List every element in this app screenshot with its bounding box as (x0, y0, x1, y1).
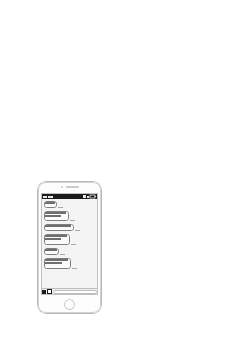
button[interactable]: Home (64, 299, 75, 310)
button[interactable] (44, 234, 96, 245)
button[interactable] (44, 248, 96, 255)
button[interactable] (44, 201, 96, 208)
button[interactable] (53, 290, 97, 294)
button[interactable] (44, 224, 96, 231)
button[interactable] (44, 258, 96, 269)
button[interactable] (44, 211, 96, 221)
